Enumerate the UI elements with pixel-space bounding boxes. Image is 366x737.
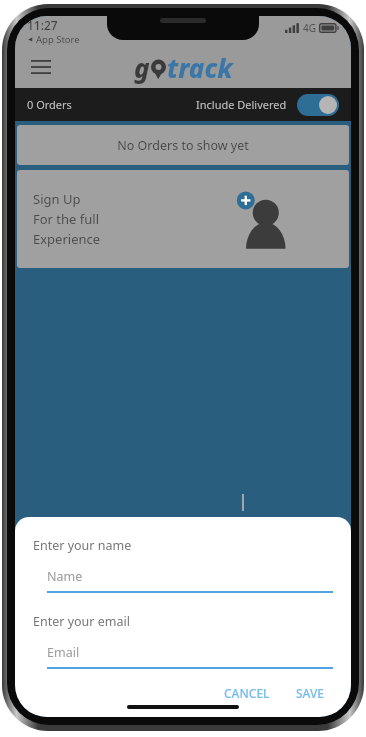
staticText: 4G [303, 21, 316, 35]
staticText: Sign Up [33, 190, 81, 208]
staticText: Name [47, 568, 83, 585]
staticText: App Store [36, 33, 80, 46]
button[interactable]: Menu [23, 49, 59, 85]
staticText: track [167, 50, 233, 85]
button[interactable]: CANCEL [216, 679, 278, 707]
button[interactable]: SAVE [288, 679, 333, 707]
staticText: Experience [33, 230, 101, 248]
staticText: CANCEL [224, 685, 270, 701]
staticText: 11:27 [27, 17, 58, 33]
staticText: SAVE [296, 685, 325, 701]
staticText: 0 Orders [27, 97, 72, 112]
button[interactable]: Name [47, 568, 333, 593]
staticText: g [134, 50, 150, 85]
staticText: Email [47, 644, 80, 661]
staticText: For the full [33, 210, 100, 228]
button[interactable]: Include Delivered toggle [297, 94, 339, 116]
staticText: Enter your name [33, 537, 132, 554]
button[interactable]: Email [47, 644, 333, 669]
button[interactable]: Sign Up [17, 170, 349, 268]
staticText: Include Delivered [196, 97, 287, 112]
staticText: No Orders to show yet [117, 137, 249, 154]
button[interactable]: No Orders to show yet [17, 125, 349, 165]
staticText: Enter your email [33, 613, 130, 630]
